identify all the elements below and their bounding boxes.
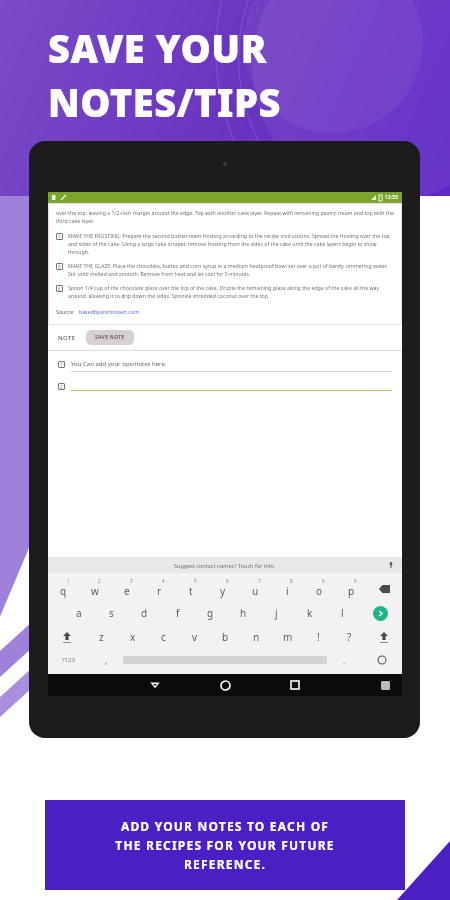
button[interactable]: s	[95, 601, 128, 625]
staticText: 9	[322, 578, 325, 584]
staticText: l	[341, 606, 344, 620]
button[interactable]: l	[326, 601, 359, 625]
button[interactable]	[71, 382, 392, 391]
staticText: Spoon 1/4 cup of the chocolate glaze ove…	[68, 284, 394, 299]
staticText: 8	[290, 578, 293, 584]
button[interactable]: ?	[334, 625, 365, 649]
button[interactable]: 1	[48, 577, 79, 601]
button[interactable]: m	[272, 625, 303, 649]
staticText: w	[91, 584, 99, 598]
staticText: Source:	[56, 308, 75, 315]
staticText: 6	[58, 286, 61, 292]
staticText: 5	[194, 578, 197, 584]
staticText: m	[283, 630, 293, 644]
staticText: p	[348, 584, 355, 598]
staticText: g	[207, 606, 214, 620]
staticText: 5	[58, 264, 61, 270]
staticText: h	[240, 606, 247, 620]
button[interactable]: g	[194, 601, 227, 625]
button[interactable]: v	[179, 625, 210, 649]
staticText: ADD YOUR NOTES TO EACH OF THE RECIPES FO…	[115, 818, 335, 872]
staticText: 2	[98, 578, 101, 584]
button[interactable]: 9	[303, 577, 335, 601]
staticText: b	[222, 630, 229, 644]
staticText: o	[316, 584, 323, 598]
button[interactable]: SAVE NOTE	[86, 330, 134, 345]
staticText: over the top, leaving a 1/2-inch margin …	[56, 209, 394, 224]
button[interactable]: 0	[335, 577, 367, 601]
staticText: MAKE THE FROSTING: Prepare the second bu…	[68, 232, 394, 255]
staticText: s	[109, 606, 114, 620]
staticText: MAKE THE GLAZE: Place the chocolate, but…	[68, 262, 394, 277]
button[interactable]: 4	[143, 577, 175, 601]
button[interactable]: Emoji	[361, 649, 402, 671]
staticText: 2	[60, 384, 63, 390]
button[interactable]: j	[260, 601, 293, 625]
button[interactable]: ?123	[48, 649, 89, 671]
button[interactable]: Enter	[359, 601, 402, 625]
staticText: n	[253, 630, 260, 644]
staticText: c	[161, 630, 166, 644]
staticText: SAVE NOTE	[95, 334, 125, 341]
button[interactable]: z	[86, 625, 117, 649]
button[interactable]: 5	[175, 577, 207, 601]
button[interactable]: a	[63, 601, 95, 625]
button[interactable]: Home	[214, 674, 236, 696]
staticText: 6	[226, 578, 229, 584]
staticText: 7	[258, 578, 261, 584]
button[interactable]: k	[293, 601, 326, 625]
staticText: r	[157, 584, 162, 598]
button[interactable]: ADD YOUR NOTES TO EACH OF THE RECIPES FO…	[45, 800, 405, 890]
button[interactable]: Back	[144, 674, 166, 696]
button[interactable]: 7	[239, 577, 271, 601]
button[interactable]: 2	[79, 577, 111, 601]
button[interactable]: Recents	[284, 674, 306, 696]
button[interactable]: c	[148, 625, 179, 649]
button[interactable]: 6	[207, 577, 239, 601]
staticText: 1	[67, 578, 70, 584]
button[interactable]: !	[303, 625, 334, 649]
staticText: a	[76, 606, 82, 620]
button[interactable]: 3	[111, 577, 143, 601]
button[interactable]: b	[210, 625, 241, 649]
staticText: SAVE YOUR	[48, 22, 267, 74]
button[interactable]: Shift	[48, 625, 86, 649]
staticText: Suggest contact names? Touch for info.	[174, 562, 276, 569]
staticText: i	[286, 584, 289, 598]
staticText: NOTE	[58, 334, 76, 342]
staticText: 4	[162, 578, 165, 584]
button[interactable]: Backspace	[367, 577, 402, 601]
staticText: 1	[58, 234, 61, 240]
staticText: f	[176, 606, 180, 620]
button[interactable]: f	[161, 601, 194, 625]
staticText: ,	[105, 655, 108, 666]
staticText: e	[124, 584, 130, 598]
button[interactable]: 8	[271, 577, 303, 601]
button[interactable]: Shift	[365, 625, 402, 649]
staticText: .	[343, 655, 346, 666]
staticText: y	[220, 584, 226, 598]
staticText: z	[99, 630, 104, 644]
button[interactable]: bakedbyanintrovert.com	[79, 308, 139, 315]
staticText: u	[252, 584, 259, 598]
staticText: v	[192, 630, 198, 644]
staticText: 0	[354, 578, 357, 584]
staticText: 3	[130, 578, 133, 584]
staticText: 12:33	[385, 194, 398, 201]
button[interactable]: n	[241, 625, 272, 649]
staticText: 1	[60, 362, 63, 368]
staticText: ?	[347, 630, 352, 644]
button[interactable]: Voice input	[386, 560, 396, 570]
staticText: x	[130, 630, 136, 644]
staticText: j	[275, 606, 278, 620]
staticText: ?123	[62, 656, 75, 664]
button[interactable]: x	[117, 625, 148, 649]
button[interactable]: Keyboard	[374, 674, 396, 696]
staticText: !	[317, 630, 320, 644]
button[interactable]: ,	[89, 649, 123, 671]
button[interactable]: h	[227, 601, 260, 625]
button[interactable]: d	[128, 601, 161, 625]
staticText: q	[60, 584, 67, 598]
